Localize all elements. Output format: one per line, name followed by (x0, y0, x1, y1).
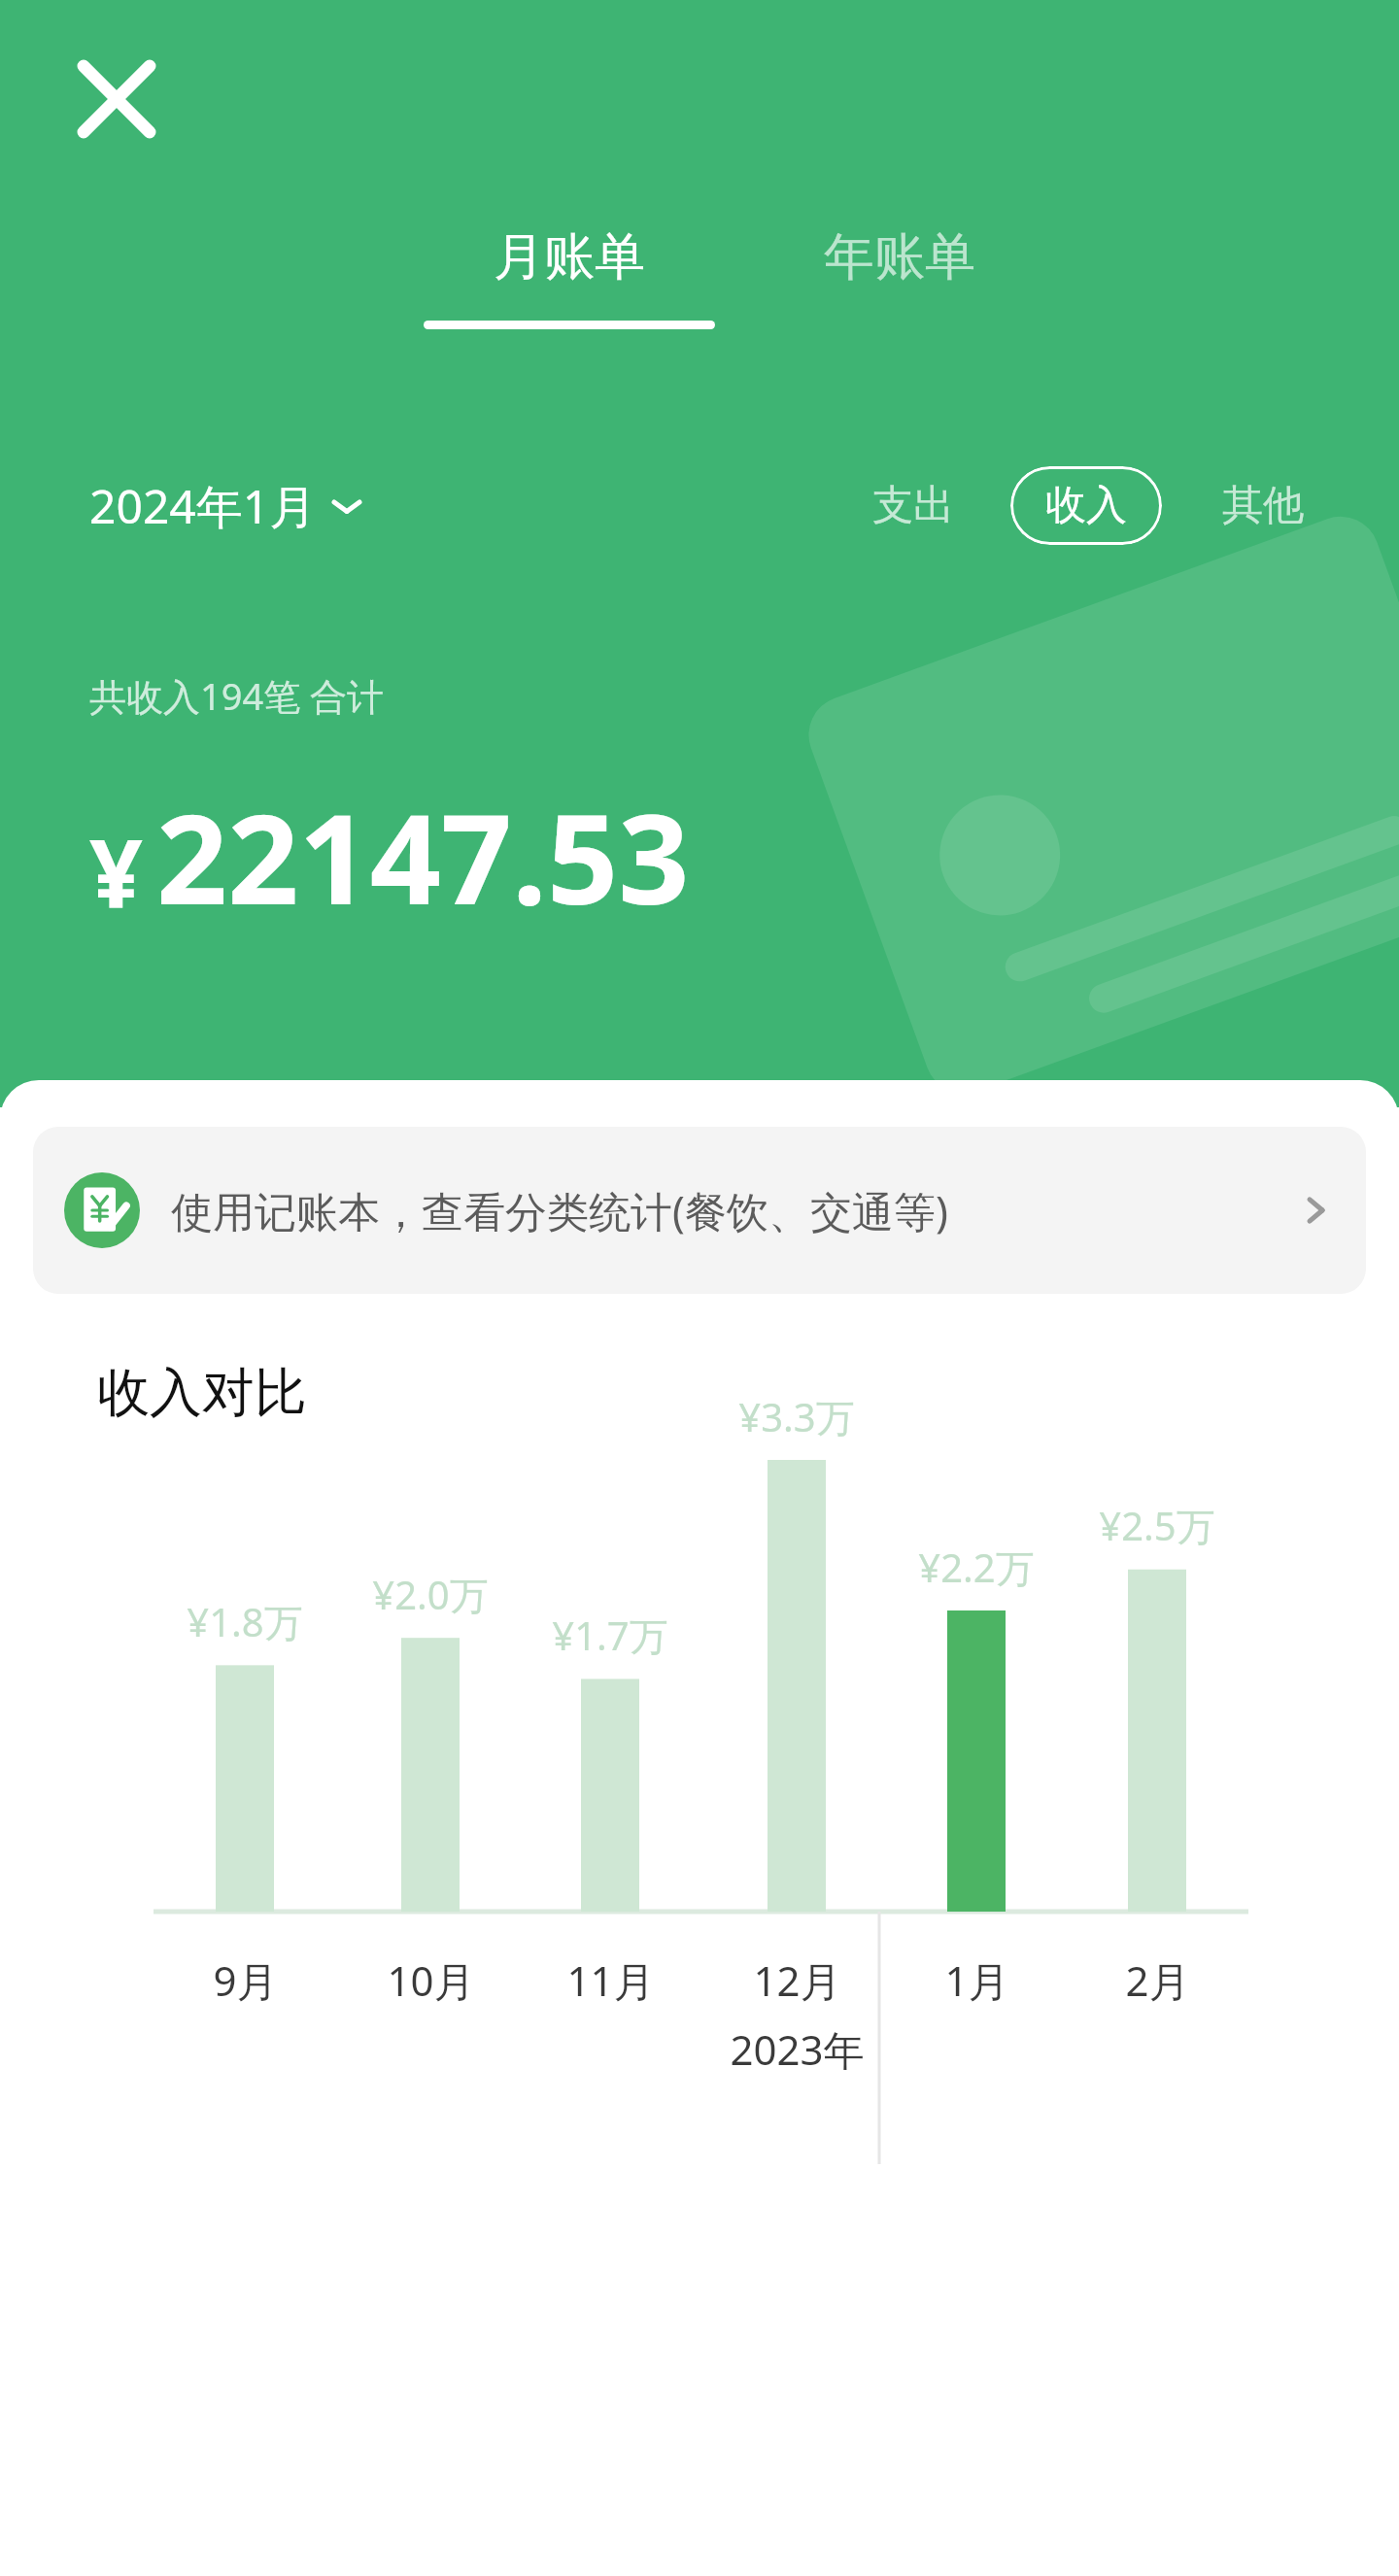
button[interactable]: 其他 (1205, 468, 1321, 543)
staticText: 11月 (566, 1952, 655, 2008)
button[interactable]: 支出 (855, 468, 972, 543)
button[interactable]: 2024年1月 (89, 474, 363, 538)
staticText: ¥2.2万 (918, 1541, 1035, 1594)
staticText: 其他 (1222, 480, 1304, 531)
staticText: 收入 (1045, 480, 1127, 531)
staticText: 使用记账本，查看分类统计(餐饮、交通等) (171, 1182, 948, 1239)
staticText: 9月 (213, 1952, 278, 2008)
button[interactable]: 月账单 (400, 225, 738, 329)
staticText: 2月 (1125, 1952, 1190, 2008)
staticText: 月账单 (494, 225, 645, 289)
button[interactable]: 收入 (1010, 466, 1162, 545)
staticText: ¥2.0万 (372, 1568, 489, 1621)
staticText: ¥3.3万 (738, 1390, 855, 1443)
staticText: 10月 (387, 1952, 475, 2008)
staticText: 共收入194笔 合计 (89, 670, 385, 721)
button[interactable]: 年账单 (801, 225, 999, 289)
staticText: ¥1.7万 (552, 1609, 668, 1662)
staticText: 2023年 (730, 2021, 865, 2077)
staticText: 2024年1月 (89, 474, 317, 538)
staticText: 支出 (872, 480, 954, 531)
staticText: 收入对比 (97, 1360, 307, 1426)
staticText: 12月 (753, 1952, 841, 2008)
staticText: 年账单 (824, 225, 975, 289)
button[interactable]: 使用记账本，查看分类统计(餐饮、交通等) (33, 1127, 1366, 1294)
staticText: 22147.53 (156, 771, 690, 940)
staticText: ¥ (89, 807, 143, 934)
button[interactable]: Close (49, 31, 185, 167)
staticText: ¥2.5万 (1099, 1499, 1215, 1552)
staticText: 1月 (944, 1952, 1009, 2008)
staticText: ¥1.8万 (187, 1595, 303, 1648)
